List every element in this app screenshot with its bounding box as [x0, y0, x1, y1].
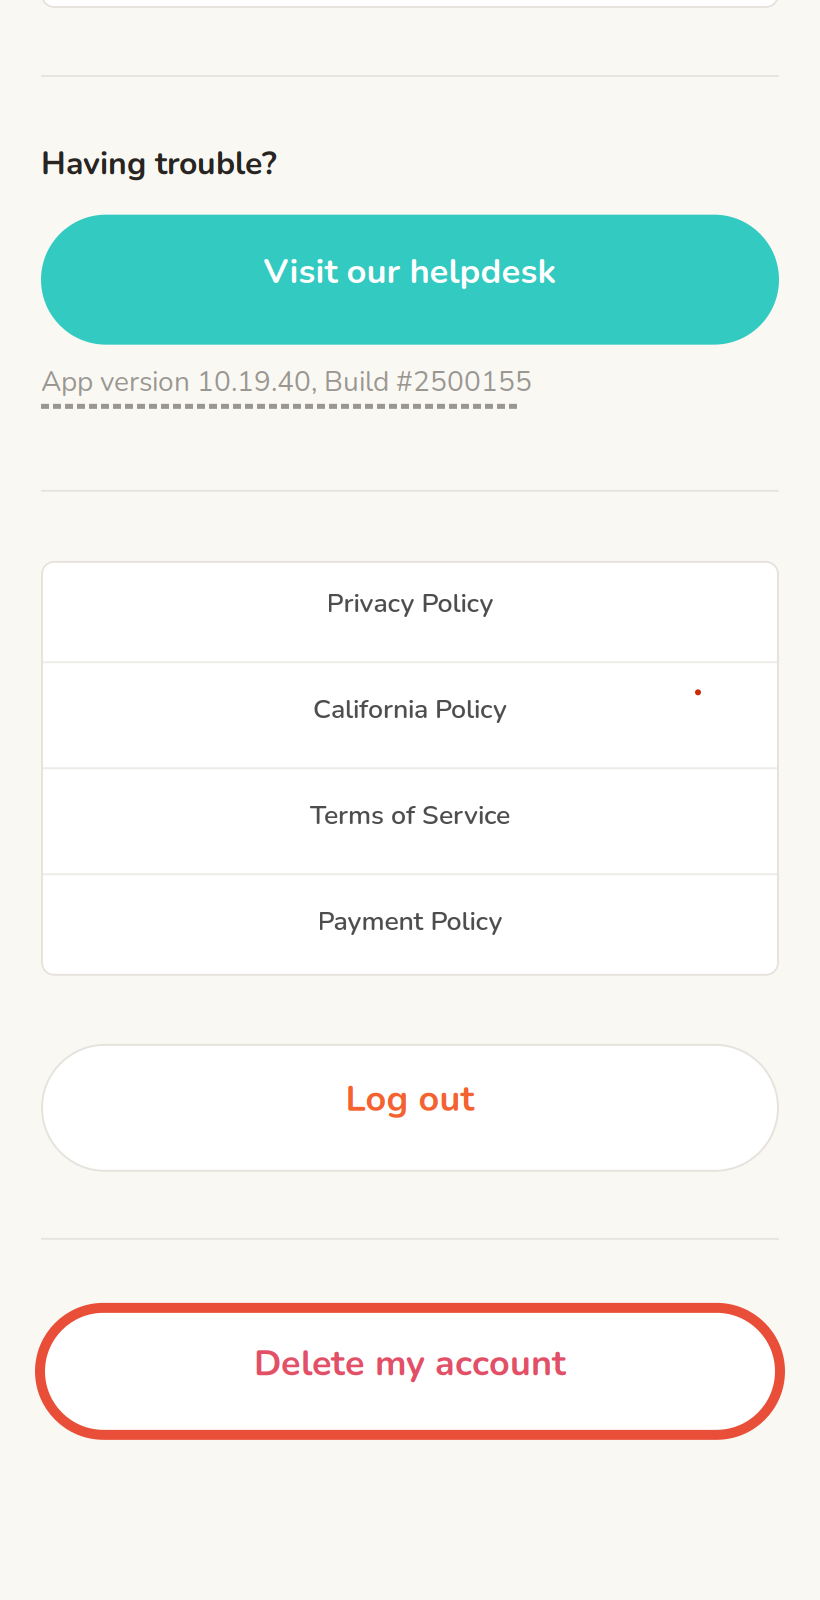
staticText: Terms of Service — [310, 797, 510, 834]
staticText: California Policy — [313, 691, 507, 728]
staticText: Visit our helpdesk — [263, 248, 556, 295]
staticText: App version 10.19.40, Build #2500155 — [41, 363, 532, 401]
staticText: Privacy Policy — [326, 585, 493, 622]
button[interactable]: Terms of Service — [41, 769, 779, 873]
staticText: Log out — [345, 1074, 474, 1123]
button[interactable]: Delete my account — [35, 1303, 785, 1440]
button[interactable]: Log out — [41, 1044, 779, 1172]
button[interactable]: Privacy Policy — [41, 557, 779, 661]
staticText: Delete my account — [254, 1339, 566, 1388]
staticText: Having trouble? — [41, 142, 277, 186]
button[interactable]: Visit our helpdesk — [41, 215, 779, 345]
staticText: Payment Policy — [317, 903, 502, 940]
button[interactable]: California Policy — [41, 663, 779, 767]
button[interactable]: Payment Policy — [41, 875, 779, 979]
